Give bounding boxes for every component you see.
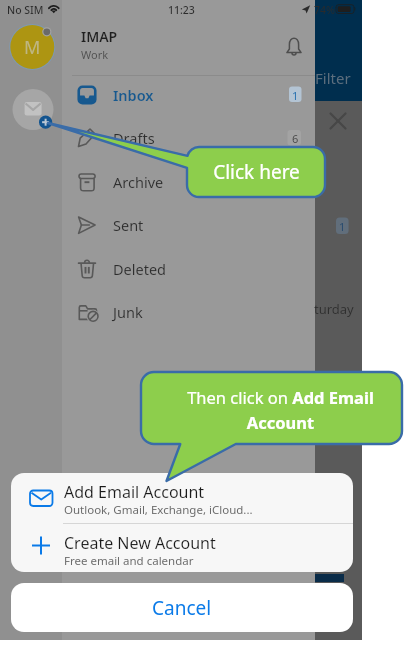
staticText: Then click on Add Email Account	[161, 386, 400, 433]
button[interactable]	[62, 204, 315, 247]
staticText: 74%	[314, 3, 335, 17]
staticText: Cancel	[152, 595, 212, 621]
staticText: Add Email Account	[64, 481, 205, 503]
staticText: 1	[292, 88, 299, 103]
staticText: 1	[339, 219, 346, 234]
button[interactable]	[62, 160, 315, 203]
button[interactable]: Account avatar	[9, 24, 55, 70]
button[interactable]	[11, 473, 353, 523]
staticText: 6	[292, 131, 299, 146]
button[interactable]: Compose mail	[12, 88, 54, 130]
button[interactable]	[62, 117, 315, 160]
staticText: turday	[314, 300, 354, 318]
staticText: Create New Account	[64, 532, 216, 554]
button[interactable]	[11, 583, 353, 632]
staticText: 11:23	[168, 3, 195, 17]
staticText: Archive	[113, 172, 164, 192]
staticText: Inbox	[113, 85, 154, 105]
staticText: Filter	[315, 68, 351, 88]
staticText: No SIM	[7, 3, 44, 17]
staticText: M	[24, 35, 41, 60]
staticText: IMAP	[81, 27, 118, 46]
button[interactable]: Close	[324, 107, 352, 135]
staticText: Outlook, Gmail, Exchange, iCloud...	[64, 502, 253, 518]
staticText: Deleted	[113, 259, 167, 279]
button[interactable]	[62, 74, 315, 117]
staticText: Free email and calendar	[64, 553, 194, 569]
staticText: Sent	[113, 215, 144, 235]
staticText: Work	[81, 47, 109, 62]
button[interactable]: Notifications	[277, 31, 305, 59]
staticText: Junk	[113, 302, 143, 322]
staticText: Drafts	[113, 128, 155, 148]
button[interactable]	[62, 247, 315, 290]
button[interactable]	[62, 291, 315, 334]
button[interactable]	[11, 523, 353, 572]
staticText: Click here	[213, 159, 300, 185]
